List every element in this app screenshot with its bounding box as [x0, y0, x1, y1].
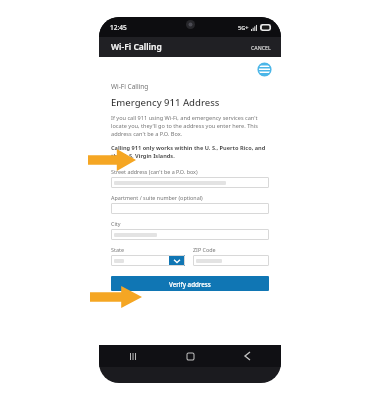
- staticText: Street address (can't be a P.O. box): [111, 168, 198, 175]
- staticText: State: [111, 246, 124, 253]
- button[interactable]: Home: [182, 348, 198, 364]
- staticText: locate you, they'll go to the address yo…: [111, 122, 258, 130]
- staticText: the U. S. Virgin Islands.: [111, 152, 175, 160]
- staticText: ZIP Code: [193, 246, 216, 253]
- staticText: Emergency 911 Address: [111, 96, 220, 109]
- button[interactable]: AT&T logo: [258, 63, 271, 76]
- button[interactable]: [111, 203, 269, 214]
- staticText: Calling 911 only works within the U. S.,…: [111, 144, 266, 152]
- button[interactable]: CANCEL: [241, 40, 281, 55]
- staticText: CANCEL: [251, 44, 271, 51]
- staticText: Wi-Fi Calling: [111, 82, 149, 91]
- button[interactable]: Select state: [111, 255, 185, 266]
- button[interactable]: [111, 229, 269, 240]
- staticText: 5G+: [238, 24, 249, 31]
- staticText: address can't be a P.O. Box.: [111, 130, 183, 138]
- button[interactable]: Recent apps: [125, 348, 141, 364]
- button[interactable]: Verify address: [111, 276, 269, 291]
- button[interactable]: [111, 177, 269, 188]
- button[interactable]: [193, 255, 269, 266]
- staticText: Wi-Fi Calling: [111, 41, 162, 53]
- staticText: City: [111, 220, 121, 227]
- staticText: If you call 911 using Wi-Fi, and emergen…: [111, 114, 258, 122]
- staticText: 12:45: [110, 23, 127, 32]
- button[interactable]: Back: [239, 348, 255, 364]
- staticText: Verify address: [169, 280, 211, 288]
- staticText: Apartment / suite number (optional): [111, 194, 203, 201]
